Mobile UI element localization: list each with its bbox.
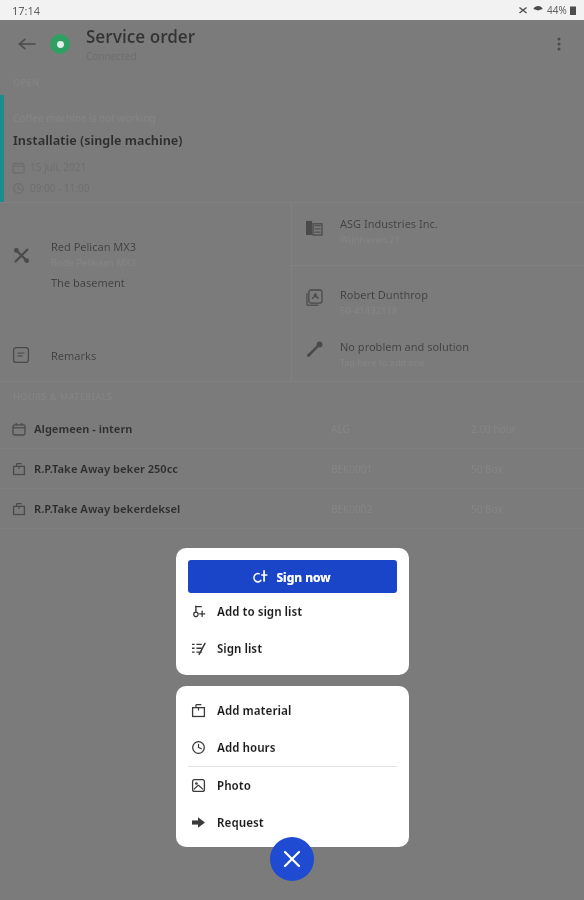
staticText: Add hours: [217, 740, 276, 756]
button[interactable]: Back: [10, 27, 44, 61]
button[interactable]: Add material: [176, 692, 409, 729]
button[interactable]: Sign list: [176, 630, 409, 667]
staticText: 15 juli, 2021: [30, 160, 87, 174]
button[interactable]: R.P.Take Away bekerdeksel: [0, 489, 584, 528]
staticText: Add material: [217, 703, 292, 719]
staticText: R.P.Take Away beker 250cc: [34, 461, 331, 476]
button[interactable]: No problem and solution: [292, 339, 584, 368]
staticText: Remarks: [51, 348, 97, 363]
staticText: ASG Industries Inc.: [340, 216, 438, 231]
staticText: Red Pelican MX3: [51, 239, 137, 254]
button[interactable]: R.P.Take Away beker 250cc: [0, 449, 584, 488]
staticText: Photo: [217, 778, 251, 794]
staticText: Installatie (single machine): [13, 132, 183, 149]
button[interactable]: More options: [542, 27, 576, 61]
button[interactable]: Photo: [176, 767, 409, 804]
button[interactable]: ASG Industries Inc.: [292, 216, 584, 246]
button[interactable]: Request: [176, 804, 409, 841]
button[interactable]: Remarks: [0, 347, 291, 381]
staticText: The basement: [51, 275, 125, 290]
button[interactable]: Algemeen - intern: [0, 409, 584, 448]
staticText: Request: [217, 815, 264, 831]
staticText: Algemeen - intern: [34, 421, 331, 436]
button[interactable]: Add to sign list: [176, 593, 409, 630]
button[interactable]: Add hours: [176, 729, 409, 766]
button[interactable]: Close: [270, 837, 314, 881]
staticText: Add to sign list: [217, 604, 303, 620]
button[interactable]: Red Pelican MX3: [0, 239, 291, 290]
button[interactable]: Sign now: [188, 560, 397, 593]
button[interactable]: Robert Dunthrop: [292, 287, 584, 317]
staticText: Robert Dunthrop: [340, 287, 428, 302]
staticText: 44%: [547, 3, 567, 17]
staticText: 17:14: [12, 3, 41, 18]
staticText: R.P.Take Away bekerdeksel: [34, 501, 331, 516]
staticText: Sign list: [217, 641, 263, 657]
staticText: Sign now: [276, 569, 331, 585]
staticText: No problem and solution: [340, 339, 469, 354]
staticText: Service order: [86, 25, 196, 48]
staticText: Connected: [86, 49, 137, 63]
staticText: 09:00 - 11:00: [30, 181, 90, 195]
